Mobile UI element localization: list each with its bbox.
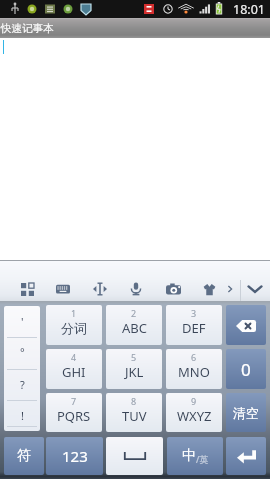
staticText: 清空 <box>233 405 259 421</box>
staticText: 123 <box>62 446 88 466</box>
staticText: ! <box>21 408 24 423</box>
button[interactable]: 8 <box>106 393 162 432</box>
staticText: 3 <box>191 307 197 319</box>
button[interactable]: Hide keyboard <box>239 273 270 305</box>
staticText: GHI <box>62 363 86 381</box>
staticText: 5 <box>131 351 137 363</box>
staticText: 4 <box>71 351 77 363</box>
staticText: JKL <box>125 363 144 381</box>
button[interactable]: Camera input <box>157 273 189 305</box>
staticText: 中 <box>182 447 196 465</box>
staticText: 7 <box>71 395 77 407</box>
staticText: WXYZ <box>177 407 212 425</box>
button[interactable]: Theme <box>193 273 225 305</box>
button[interactable]: 4 <box>46 349 102 389</box>
button[interactable]: Voice input <box>120 273 152 305</box>
staticText: ' <box>21 314 24 329</box>
button[interactable]: Move cursor <box>84 273 116 305</box>
button[interactable]: Space <box>106 437 163 475</box>
button[interactable]: 3 <box>166 305 222 345</box>
staticText: 2 <box>131 307 137 319</box>
staticText: MNO <box>178 363 210 381</box>
staticText: ? <box>20 377 25 392</box>
staticText: /英 <box>196 453 209 465</box>
button[interactable]: 清空 <box>226 393 266 432</box>
button[interactable]: 中 <box>167 437 223 475</box>
button[interactable]: Keyboard layouts <box>11 273 43 305</box>
staticText: 6 <box>191 351 197 363</box>
staticText: 1 <box>71 307 77 319</box>
staticText: 快速记事本 <box>1 22 54 35</box>
button[interactable]: ' <box>4 306 40 431</box>
button[interactable]: More <box>214 273 246 305</box>
staticText: 18:01 <box>233 1 265 18</box>
staticText: 0 <box>241 358 251 381</box>
staticText: 分词 <box>61 320 87 336</box>
staticText: 9 <box>191 395 197 407</box>
staticText: 8 <box>131 395 137 407</box>
staticText: PQRS <box>57 407 91 425</box>
staticText: DEF <box>182 319 206 337</box>
button[interactable]: 符 <box>4 437 44 475</box>
staticText: ° <box>20 344 25 359</box>
button[interactable]: 123 <box>46 437 103 475</box>
staticText: TUV <box>122 407 147 425</box>
button[interactable]: 6 <box>166 349 222 389</box>
button[interactable]: 0 <box>226 349 266 389</box>
staticText: ABC <box>122 319 147 337</box>
button[interactable]: Delete <box>226 305 266 345</box>
button[interactable]: 2 <box>106 305 162 345</box>
button[interactable]: 5 <box>106 349 162 389</box>
button[interactable]: 1 <box>46 305 102 345</box>
button[interactable]: Keyboard <box>47 273 79 305</box>
button[interactable]: 7 <box>46 393 102 432</box>
button[interactable]: 9 <box>166 393 222 432</box>
button[interactable]: Enter <box>226 437 266 475</box>
staticText: 符 <box>17 447 31 465</box>
